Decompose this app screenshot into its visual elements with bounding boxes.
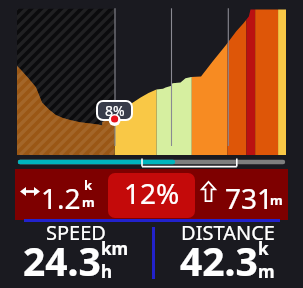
button[interactable]: DISTANCE — [152, 219, 303, 285]
staticText: k — [258, 237, 269, 260]
staticText: DISTANCE — [181, 219, 275, 246]
staticText: 731 — [225, 179, 274, 217]
staticText: SPEED — [46, 219, 106, 246]
staticText: m — [82, 193, 95, 211]
staticText: 1.2 — [41, 179, 81, 217]
staticText: k — [84, 176, 93, 194]
staticText: m — [258, 260, 275, 283]
staticText: h — [101, 260, 113, 283]
staticText: 42.3 — [180, 234, 258, 287]
staticText: 12% — [124, 174, 180, 212]
staticText: km — [101, 237, 129, 260]
staticText: 24.3 — [23, 234, 101, 287]
button[interactable]: 12% — [108, 173, 195, 218]
button[interactable]: 1.2 — [15, 169, 288, 220]
staticText: 8% — [105, 102, 125, 118]
staticText: m — [270, 191, 283, 209]
button[interactable]: SPEED — [0, 219, 152, 285]
